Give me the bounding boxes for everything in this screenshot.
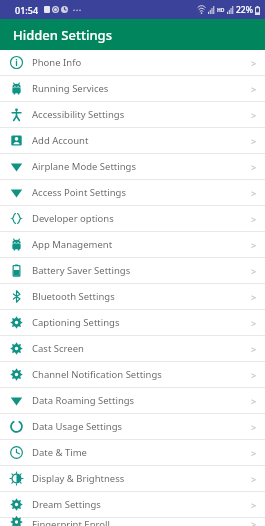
- staticText: Display & Brightness: [32, 472, 243, 485]
- staticText: Hidden Settings: [13, 26, 112, 44]
- staticText: >: [251, 421, 257, 433]
- button[interactable]: Developer options: [0, 206, 265, 232]
- button[interactable]: Channel Notification Settings: [0, 362, 265, 388]
- button[interactable]: Add Account: [0, 128, 265, 154]
- staticText: >: [251, 135, 257, 147]
- staticText: Bluetooth Settings: [32, 290, 243, 303]
- button[interactable]: Display & Brightness: [0, 466, 265, 492]
- staticText: 01:54: [15, 4, 39, 16]
- button[interactable]: Captioning Settings: [0, 310, 265, 336]
- button[interactable]: Airplane Mode Settings: [0, 154, 265, 180]
- staticText: >: [251, 213, 257, 225]
- staticText: >: [251, 187, 257, 199]
- staticText: >: [251, 291, 257, 303]
- staticText: Cast Screen: [32, 342, 243, 355]
- staticText: Phone Info: [32, 56, 243, 69]
- button[interactable]: Accessibility Settings: [0, 102, 265, 128]
- button[interactable]: Data Usage Settings: [0, 414, 265, 440]
- staticText: Battery Saver Settings: [32, 264, 243, 277]
- staticText: >: [251, 57, 257, 69]
- staticText: >: [251, 109, 257, 121]
- button[interactable]: Phone Info: [0, 50, 265, 76]
- staticText: Developer options: [32, 212, 243, 225]
- staticText: >: [251, 161, 257, 173]
- button[interactable]: Battery Saver Settings: [0, 258, 265, 284]
- staticText: >: [251, 473, 257, 485]
- staticText: >: [251, 265, 257, 277]
- staticText: Fingerprint Enroll: [32, 518, 243, 526]
- button[interactable]: Bluetooth Settings: [0, 284, 265, 310]
- staticText: Data Usage Settings: [32, 420, 243, 433]
- button[interactable]: App Management: [0, 232, 265, 258]
- button[interactable]: Fingerprint Enroll: [0, 518, 265, 526]
- staticText: 22%: [236, 4, 253, 16]
- staticText: Access Point Settings: [32, 186, 243, 199]
- staticText: Airplane Mode Settings: [32, 160, 243, 173]
- staticText: >: [251, 317, 257, 329]
- staticText: App Management: [32, 238, 243, 251]
- staticText: HD: [217, 7, 225, 14]
- staticText: Accessibility Settings: [32, 108, 243, 121]
- staticText: >: [251, 395, 257, 407]
- staticText: >: [251, 369, 257, 381]
- staticText: Running Services: [32, 82, 243, 95]
- staticText: >: [251, 518, 257, 526]
- button[interactable]: Cast Screen: [0, 336, 265, 362]
- button[interactable]: Running Services: [0, 76, 265, 102]
- button[interactable]: Date & Time: [0, 440, 265, 466]
- staticText: >: [251, 343, 257, 355]
- staticText: Captioning Settings: [32, 316, 243, 329]
- staticText: Date & Time: [32, 446, 243, 459]
- button[interactable]: Access Point Settings: [0, 180, 265, 206]
- staticText: >: [251, 447, 257, 459]
- button[interactable]: Data Roaming Settings: [0, 388, 265, 414]
- staticText: Channel Notification Settings: [32, 368, 243, 381]
- staticText: Add Account: [32, 134, 243, 147]
- staticText: Data Roaming Settings: [32, 394, 243, 407]
- button[interactable]: Dream Settings: [0, 492, 265, 518]
- staticText: >: [251, 499, 257, 511]
- staticText: Dream Settings: [32, 498, 243, 511]
- staticText: >: [251, 239, 257, 251]
- staticText: >: [251, 83, 257, 95]
